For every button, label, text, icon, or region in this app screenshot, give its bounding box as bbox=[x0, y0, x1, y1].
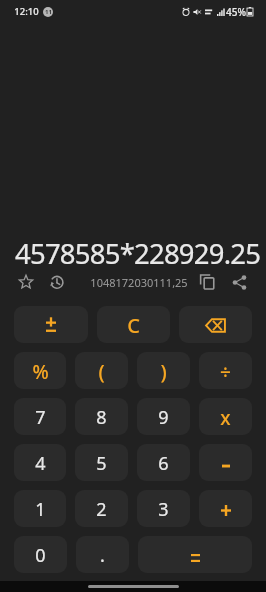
button[interactable]: x bbox=[199, 398, 252, 435]
staticText: 12:10 bbox=[14, 5, 39, 18]
button[interactable]: Backspace bbox=[179, 306, 252, 343]
button[interactable]: 7 bbox=[14, 398, 66, 435]
staticText: 4578585*228929.25 bbox=[15, 235, 261, 272]
button[interactable]: 0 bbox=[14, 536, 67, 573]
button[interactable]: 8 bbox=[75, 398, 128, 435]
button[interactable]: ( bbox=[75, 352, 128, 389]
staticText: % bbox=[32, 359, 49, 385]
button[interactable]: C bbox=[97, 306, 170, 343]
button[interactable]: Equals bbox=[138, 536, 252, 573]
button[interactable]: 6 bbox=[137, 444, 190, 481]
button[interactable]: 9 bbox=[137, 398, 190, 435]
staticText: 0 bbox=[35, 543, 46, 568]
staticText: 3 bbox=[158, 497, 169, 522]
staticText: 45% bbox=[226, 5, 246, 19]
staticText: 8 bbox=[96, 405, 107, 430]
staticText: 6 bbox=[158, 451, 169, 476]
staticText: x bbox=[220, 405, 231, 431]
staticText: 11 bbox=[45, 8, 52, 16]
button[interactable]: Copy bbox=[196, 270, 220, 294]
staticText: ÷ bbox=[220, 359, 231, 385]
staticText: 1048172030111,25 bbox=[90, 275, 188, 290]
staticText: 2 bbox=[96, 497, 107, 522]
button[interactable]: 1 bbox=[14, 490, 66, 527]
button[interactable]: % bbox=[14, 352, 66, 389]
staticText: ( bbox=[98, 358, 105, 385]
staticText: 4 bbox=[35, 451, 46, 476]
staticText: ) bbox=[160, 358, 167, 385]
button[interactable]: Favorite bbox=[14, 270, 38, 294]
button[interactable]: Share bbox=[227, 270, 251, 294]
button[interactable]: 4 bbox=[14, 444, 66, 481]
staticText: 9 bbox=[158, 405, 169, 430]
button[interactable]: 2 bbox=[75, 490, 128, 527]
button[interactable]: 3 bbox=[137, 490, 190, 527]
button[interactable]: ) bbox=[137, 352, 190, 389]
button[interactable]: Minus bbox=[199, 444, 252, 481]
staticText: . bbox=[100, 543, 105, 568]
button[interactable]: . bbox=[76, 536, 129, 573]
button[interactable]: Plus minus bbox=[14, 306, 88, 343]
staticText: 7 bbox=[35, 405, 46, 430]
button[interactable]: Plus bbox=[199, 490, 252, 527]
staticText: 5 bbox=[96, 451, 107, 476]
button[interactable]: History bbox=[44, 270, 68, 294]
staticText: 1 bbox=[35, 497, 46, 522]
button[interactable]: ÷ bbox=[199, 352, 252, 389]
staticText: C bbox=[127, 312, 140, 339]
button[interactable]: 5 bbox=[75, 444, 128, 481]
